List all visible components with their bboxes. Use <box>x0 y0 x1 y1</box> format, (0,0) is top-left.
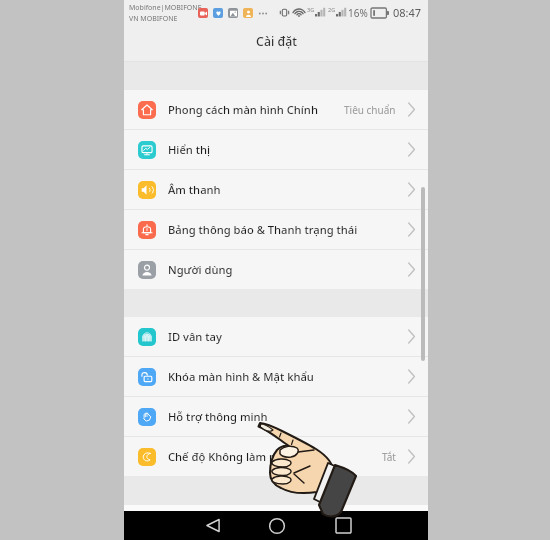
staticText: Tiêu chuẩn <box>344 103 396 117</box>
staticText: Hiển thị <box>168 142 211 157</box>
staticText: Mobifone|MOBIFONE <box>129 3 202 13</box>
staticText: VN MOBIFONE <box>129 14 178 24</box>
staticText: Khóa màn hình & Mật khẩu <box>168 369 314 384</box>
staticText: Người dùng <box>168 262 233 277</box>
staticText: 2G <box>328 6 336 13</box>
button[interactable]: Chế độ Không làm phiền <box>124 437 428 476</box>
staticText: 3G <box>307 6 315 13</box>
staticText: Âm thanh <box>168 182 221 197</box>
staticText: Phong cách màn hình Chính <box>168 102 318 117</box>
button[interactable]: Home <box>260 511 293 540</box>
staticText: Chế độ Không làm phiền <box>168 449 300 464</box>
staticText: Hỗ trợ thông minh <box>168 409 268 424</box>
staticText: 16% <box>348 6 368 20</box>
button[interactable]: Khóa màn hình & Mật khẩu <box>124 357 428 396</box>
staticText: ID vân tay <box>168 329 222 344</box>
button[interactable]: ID vân tay <box>124 317 428 356</box>
staticText: 08:47 <box>393 5 422 20</box>
button[interactable]: Người dùng <box>124 250 428 289</box>
button[interactable]: Hỗ trợ thông minh <box>124 397 428 436</box>
staticText: Bảng thông báo & Thanh trạng thái <box>168 222 358 237</box>
staticText: Tắt <box>382 450 396 464</box>
button[interactable]: Bảng thông báo & Thanh trạng thái <box>124 210 428 249</box>
button[interactable]: Back <box>196 511 229 540</box>
button[interactable]: Phong cách màn hình Chính <box>124 90 428 129</box>
button[interactable]: Recent apps <box>327 511 360 540</box>
button[interactable]: Hiển thị <box>124 130 428 169</box>
staticText: Cài đặt <box>256 33 297 50</box>
button[interactable]: Âm thanh <box>124 170 428 209</box>
